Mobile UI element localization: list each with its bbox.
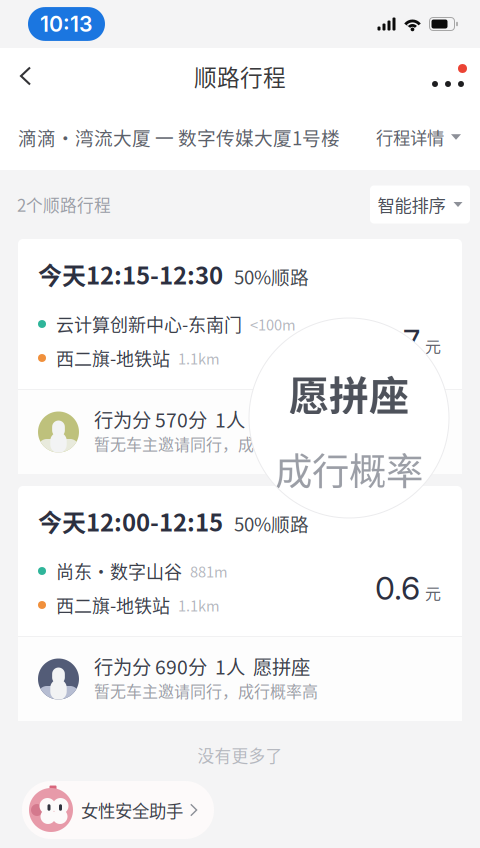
staticText: 女性安全助手 [81,797,183,823]
staticText: 1.1km [178,594,220,616]
staticText: 愿拼座 [289,364,409,422]
button[interactable]: Back [0,52,52,99]
staticText: 2个顺路行程 [17,192,111,216]
staticText: 西二旗-地铁站 [56,592,170,618]
staticText: 行为分 570分 1人 [94,405,245,433]
button[interactable]: 今天12:00-12:15 [18,486,462,721]
staticText: 1.7 [383,322,420,360]
staticText: 云计算创新中心-东南门 [56,311,242,337]
staticText: 滴滴·湾流大厦 一 数字传媒大厦1号楼 [18,123,340,150]
staticText: 没有更多了 [197,743,282,767]
staticText: 10:13 [40,11,93,37]
staticText: 行程详情 [376,124,444,150]
staticText: 暂无车主邀请同行，成行概率高 [94,679,318,702]
button[interactable]: 今天12:15-12:30 [18,239,462,474]
staticText: 50%顺路 [234,510,309,537]
staticText: 元 [425,334,441,357]
staticText: 今天12:00-12:15 [38,504,223,538]
staticText: 行为分 690分 1人 愿拼座 [94,652,310,680]
button[interactable]: 行程详情 [376,114,461,160]
button[interactable]: 智能排序 [370,185,470,223]
staticText: 成行概率 [275,442,423,496]
staticText: 顺路行程 [194,60,286,92]
staticText: 50%顺路 [234,263,309,290]
staticText: 西二旗-地铁站 [56,345,170,371]
staticText: <100m [250,313,296,335]
button[interactable]: More options [418,52,480,100]
staticText: 暂无车主邀请同行，成行概率高 [94,432,318,455]
staticText: 今天12:15-12:30 [38,257,223,291]
staticText: 0.6 [375,569,420,607]
button[interactable]: 女性安全助手 [22,781,214,839]
staticText: 尚东·数字山谷 [56,558,182,584]
staticText: 元 [425,581,441,604]
staticText: 881m [190,560,228,582]
staticText: 1.1km [178,347,220,369]
staticText: 智能排序 [377,192,445,217]
